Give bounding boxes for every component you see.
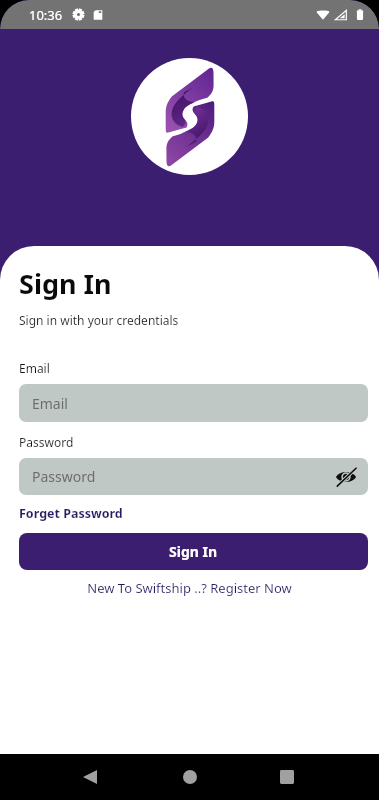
staticText: Sign In bbox=[169, 542, 218, 561]
button[interactable]: Recents bbox=[264, 754, 310, 800]
button[interactable]: Show password bbox=[335, 466, 357, 488]
staticText: 10:36 bbox=[29, 6, 63, 24]
staticText: Sign In bbox=[19, 265, 112, 302]
button[interactable]: Back bbox=[67, 754, 113, 800]
staticText: Forget Password bbox=[19, 505, 123, 522]
button[interactable]: Forget Password bbox=[19, 505, 123, 522]
staticText: Email bbox=[32, 394, 68, 413]
staticText: Password bbox=[32, 467, 96, 486]
staticText: Email bbox=[19, 360, 50, 376]
button[interactable]: Email bbox=[19, 384, 368, 422]
button[interactable]: Sign In bbox=[19, 533, 368, 570]
button[interactable]: Home bbox=[167, 754, 213, 800]
staticText: Password bbox=[19, 434, 74, 450]
button[interactable]: New To Swiftship ..? Register Now bbox=[0, 579, 379, 597]
staticText: Sign in with your credentials bbox=[19, 312, 179, 328]
staticText: New To Swiftship ..? Register Now bbox=[87, 579, 292, 597]
button[interactable]: Password bbox=[19, 458, 368, 495]
